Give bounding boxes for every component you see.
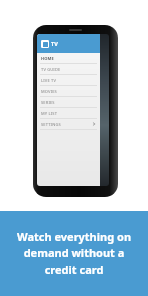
staticText: SETTINGS bbox=[41, 122, 61, 127]
staticText: MOVIES bbox=[41, 89, 57, 94]
staticText: Watch everything on demand without a cre… bbox=[13, 229, 135, 278]
other: Open settings bbox=[92, 122, 96, 126]
staticText: TV GUIDE bbox=[41, 67, 61, 72]
staticText: SERIES bbox=[41, 100, 55, 105]
staticText: TV bbox=[51, 40, 58, 47]
button[interactable]: MY LIST bbox=[37, 108, 100, 118]
button[interactable]: HOME bbox=[37, 53, 100, 63]
other: TV logo bbox=[41, 40, 49, 48]
staticText: MY LIST bbox=[41, 111, 58, 116]
staticText: HOME bbox=[41, 56, 54, 61]
button[interactable]: SETTINGS bbox=[37, 119, 100, 129]
button[interactable]: TV logo bbox=[37, 34, 100, 53]
button[interactable]: TV GUIDE bbox=[37, 64, 100, 74]
button[interactable]: SERIES bbox=[37, 97, 100, 107]
button[interactable]: MOVIES bbox=[37, 86, 100, 96]
staticText: LIVE TV bbox=[41, 78, 57, 83]
button[interactable]: LIVE TV bbox=[37, 75, 100, 85]
